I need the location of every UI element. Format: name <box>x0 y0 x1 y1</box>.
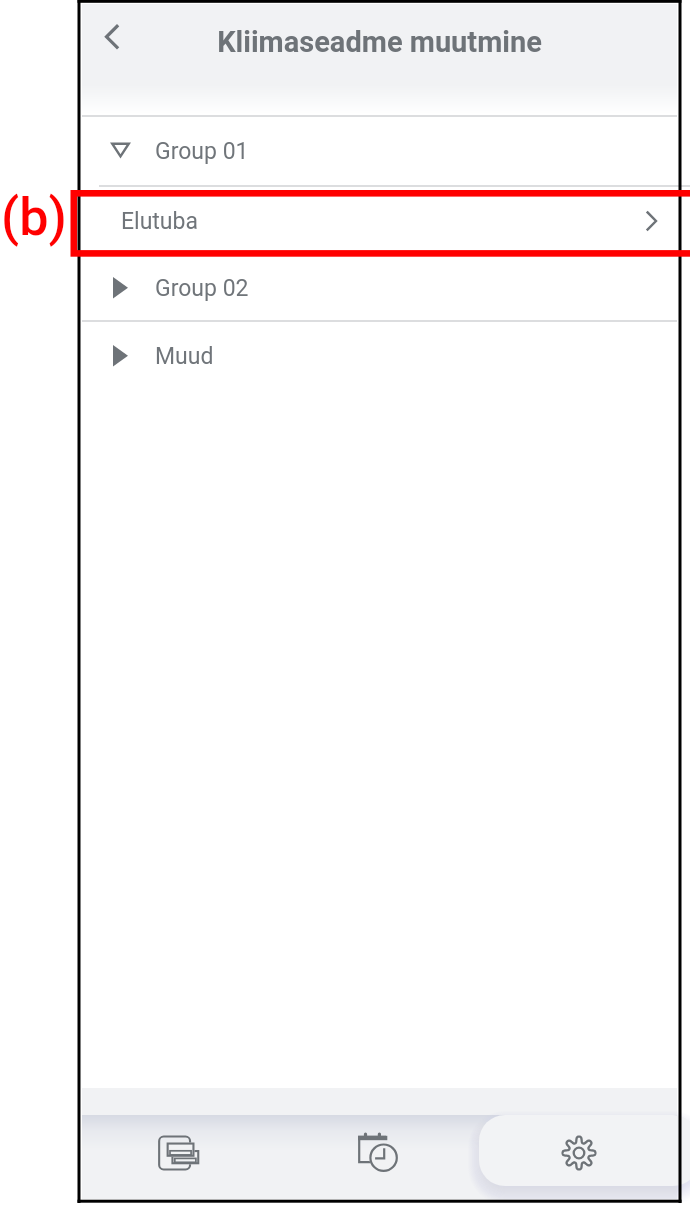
button[interactable]: Group 01 <box>82 117 677 185</box>
staticText: Muud <box>155 343 214 370</box>
staticText: Kliimaseadme muutmine <box>82 25 677 59</box>
button[interactable]: Back <box>86 9 142 69</box>
staticText: Elutuba <box>121 208 198 235</box>
staticText: Group 01 <box>155 138 249 165</box>
button[interactable]: Devices <box>82 1115 281 1188</box>
button[interactable]: Schedule <box>281 1115 479 1188</box>
staticText: Group 02 <box>155 275 249 302</box>
button[interactable]: Group 02 <box>82 254 677 322</box>
button[interactable]: Muud <box>82 322 677 390</box>
button[interactable]: Settings <box>479 1115 677 1188</box>
button[interactable]: Elutuba <box>82 187 677 255</box>
staticText: (b) <box>1 187 67 248</box>
